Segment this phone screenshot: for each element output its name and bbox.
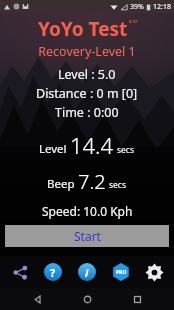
staticText: 14.4 <box>70 130 114 160</box>
button[interactable]: Pro version <box>107 258 135 286</box>
staticText: 7.2 <box>78 168 106 195</box>
button[interactable]: Help <box>39 258 67 286</box>
button[interactable]: Recent apps <box>124 288 150 310</box>
staticText: 39% <box>130 2 144 12</box>
button[interactable]: Back <box>24 288 50 310</box>
button[interactable]: Info <box>73 258 101 286</box>
staticText: YoYo Test <box>38 16 128 42</box>
staticText: 12:18 <box>153 2 171 12</box>
button[interactable]: Settings <box>140 258 168 286</box>
staticText: Recovery-Level 1 <box>38 43 136 60</box>
staticText: ? <box>50 265 56 280</box>
staticText: secs <box>117 144 135 156</box>
staticText: Time : 0:00 <box>55 104 119 121</box>
staticText: PRO <box>116 269 127 276</box>
staticText: secs <box>109 179 127 191</box>
button[interactable]: Share <box>6 258 34 286</box>
staticText: Level <box>39 141 67 157</box>
staticText: Beep <box>47 176 75 192</box>
button[interactable]: Home <box>74 288 100 310</box>
staticText: 2.17 <box>129 19 137 24</box>
staticText: Distance : 0 m [0] <box>36 85 138 102</box>
button[interactable]: Start <box>5 225 169 247</box>
staticText: i <box>85 265 89 280</box>
staticText: Level : 5.0 <box>58 66 116 83</box>
staticText: Start <box>74 228 101 244</box>
staticText: Speed: 10.0 Kph <box>42 203 133 219</box>
